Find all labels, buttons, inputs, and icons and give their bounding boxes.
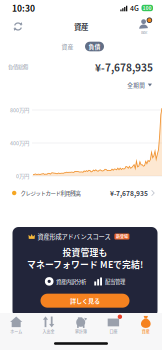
- staticText: クレジットカード利用残高: [20, 189, 80, 197]
- staticText: マネーフォワード MEで完結!: [27, 258, 143, 270]
- staticText: 資産形成アドバンスコース: [37, 232, 110, 241]
- button[interactable]: 資産: [58, 41, 77, 51]
- button[interactable]: 入出金: [32, 313, 65, 337]
- button[interactable]: 資産: [130, 313, 162, 337]
- button[interactable]: 口座: [97, 313, 130, 337]
- staticText: 入出金: [43, 329, 55, 335]
- staticText: 資産内訳分析: [56, 277, 86, 285]
- staticText: ¥-7,678,935: [110, 188, 148, 198]
- staticText: 負債総額: [8, 63, 28, 71]
- staticText: 投資管理も: [62, 246, 107, 258]
- button[interactable]: クレジットカード利用残高: [0, 184, 162, 202]
- staticText: 100: [143, 5, 152, 11]
- staticText: 負債: [88, 42, 100, 51]
- button[interactable]: 負債: [85, 42, 104, 51]
- staticText: 800万円: [10, 106, 29, 114]
- staticText: ホーム: [10, 329, 22, 335]
- staticText: 4G: [130, 3, 139, 13]
- staticText: 400万円: [10, 139, 29, 147]
- button[interactable]: 全期間: [127, 78, 152, 92]
- staticText: 資産: [142, 329, 150, 335]
- button[interactable]: ホーム: [0, 313, 32, 337]
- staticText: 配当管理: [105, 277, 125, 285]
- button[interactable]: 資産形成アドバンスコース: [4, 227, 157, 317]
- staticText: 家計簿: [75, 329, 87, 335]
- staticText: 資産: [74, 21, 88, 32]
- button[interactable]: Account: [133, 16, 155, 37]
- staticText: 新登場: [116, 234, 128, 239]
- button[interactable]: Refresh: [7, 16, 29, 37]
- staticText: 全期間: [127, 81, 145, 89]
- staticText: 口座: [109, 329, 117, 335]
- staticText: ¥-7,678,935: [95, 60, 153, 74]
- staticText: 10:30: [12, 2, 35, 14]
- staticText: 資産: [61, 42, 73, 51]
- staticText: 設定: [141, 30, 147, 35]
- staticText: 0万円: [16, 172, 29, 180]
- staticText: 詳しく見る: [70, 296, 100, 305]
- button[interactable]: 家計簿: [65, 313, 97, 337]
